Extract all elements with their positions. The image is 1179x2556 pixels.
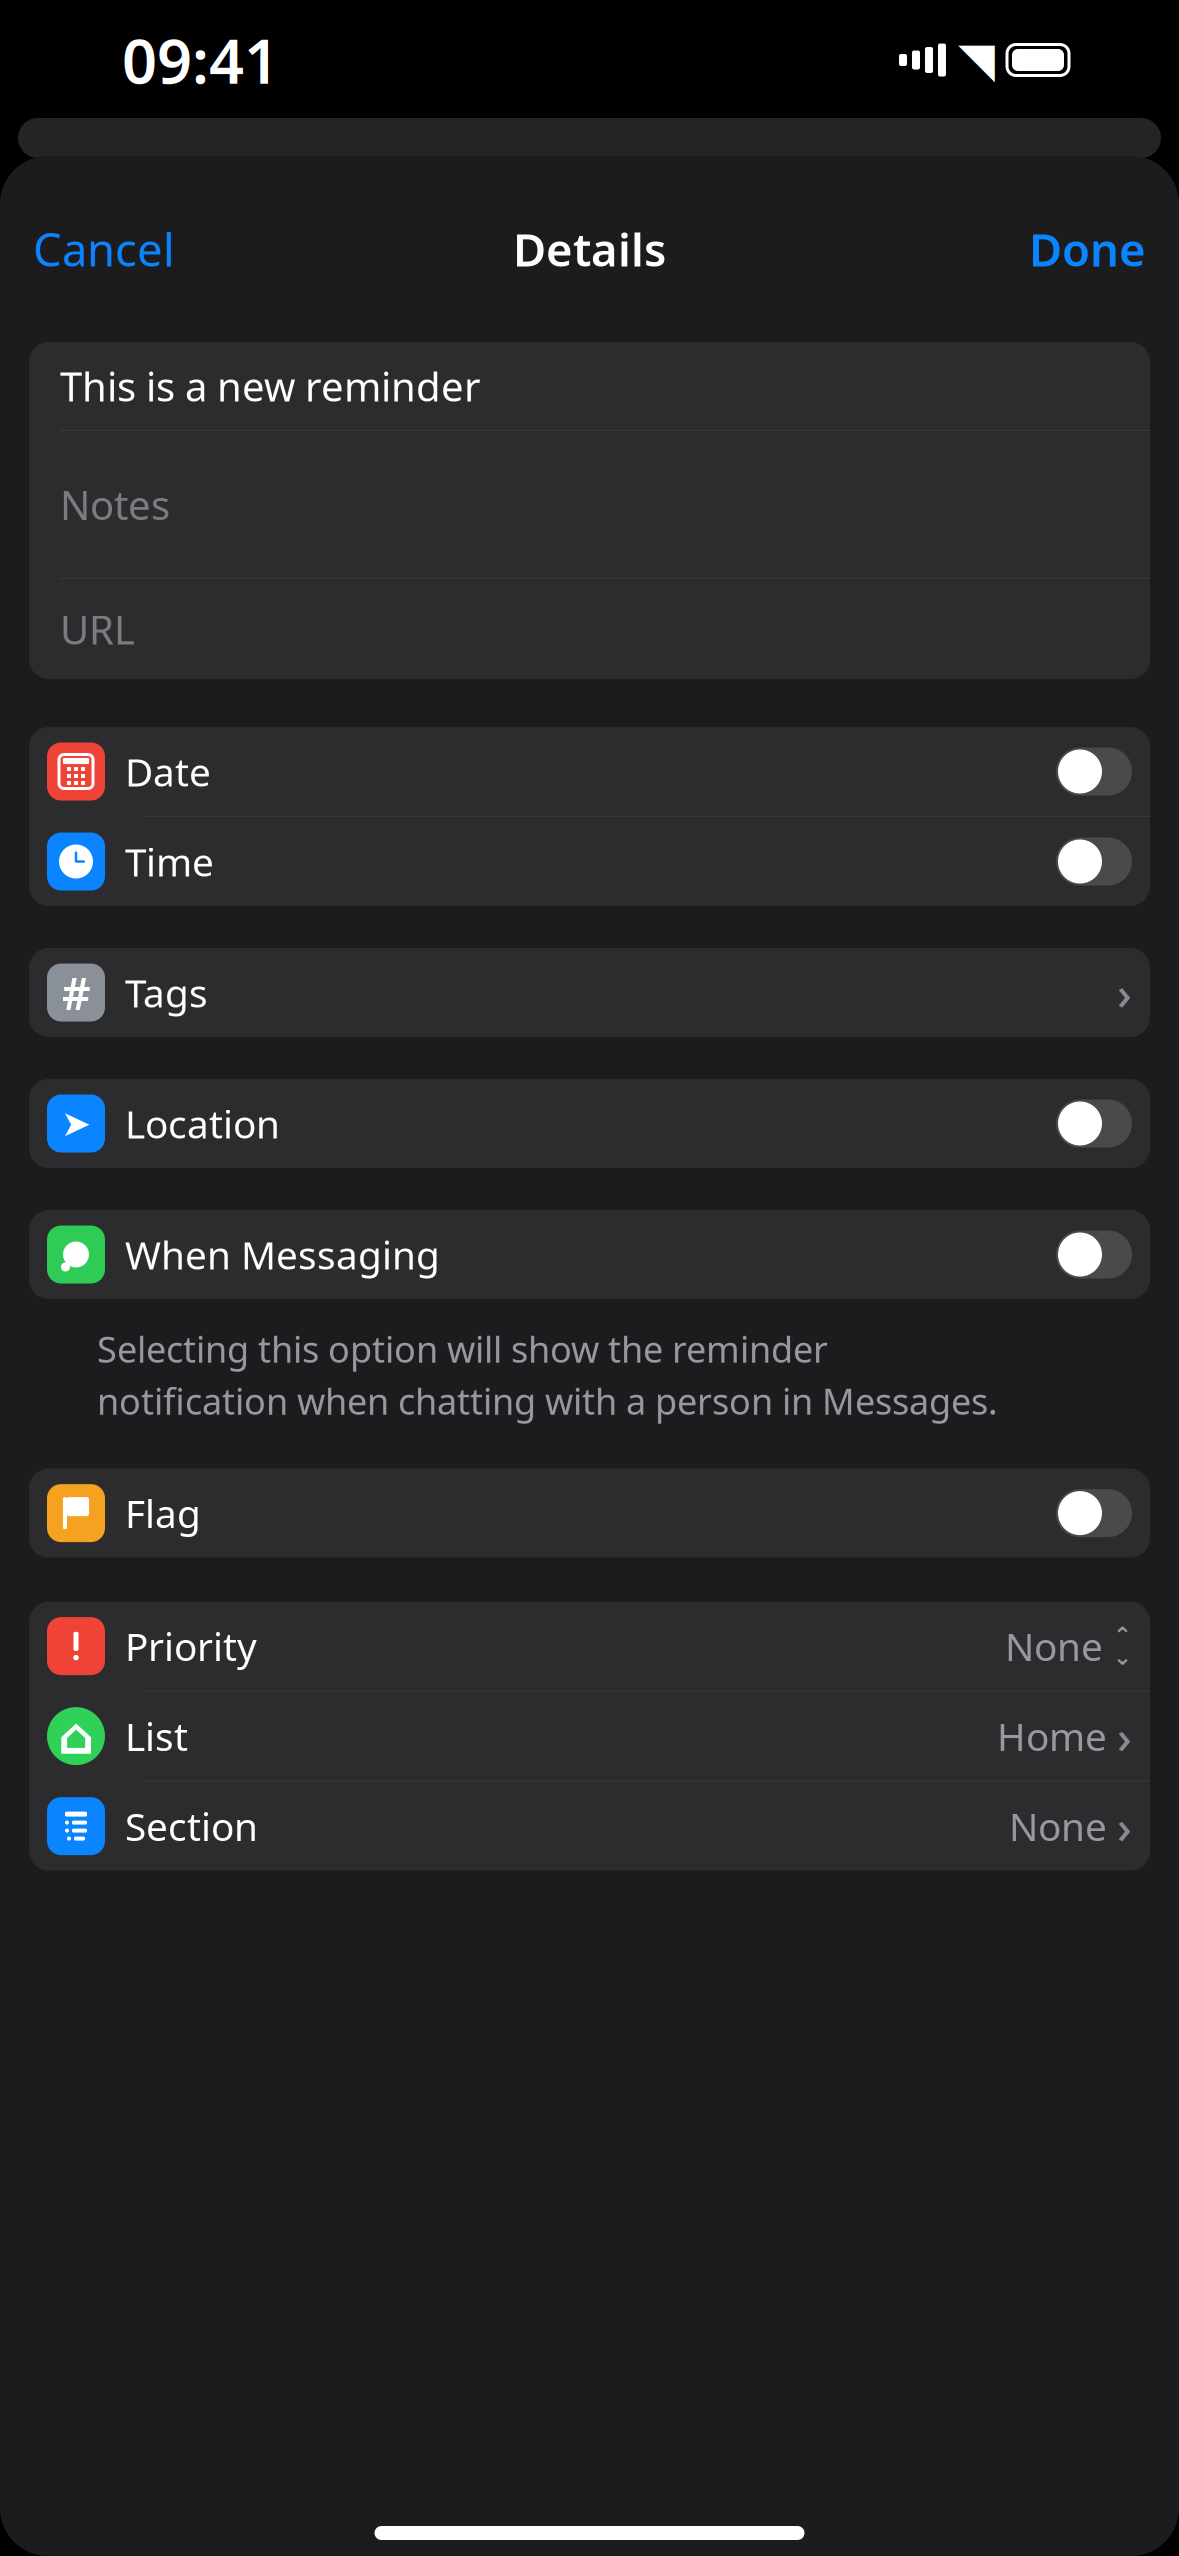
staticText: Location xyxy=(125,1098,280,1149)
button[interactable]: Done xyxy=(1015,209,1160,289)
staticText: ⌃ xyxy=(1113,1622,1132,1648)
staticText: This is a new reminder xyxy=(60,359,481,412)
staticText: notification when chatting with a person… xyxy=(97,1377,998,1425)
button[interactable]: This is a new reminder xyxy=(29,342,1150,430)
staticText: Date xyxy=(125,746,211,797)
staticText: Notes xyxy=(60,478,170,531)
staticText: Flag xyxy=(125,1487,201,1539)
button[interactable]: ➤ xyxy=(29,1079,1150,1168)
button[interactable]: ⌂ xyxy=(29,1692,1150,1781)
button[interactable]: When Messaging xyxy=(29,1210,1150,1299)
staticText: Details xyxy=(513,219,666,279)
staticText: Done xyxy=(1029,219,1146,279)
staticText: Home xyxy=(997,1710,1107,1762)
staticText: ⌄ xyxy=(1113,1644,1132,1670)
staticText: › xyxy=(1117,962,1132,1023)
button[interactable]: Flag xyxy=(29,1469,1150,1558)
button[interactable]: Date xyxy=(29,727,1150,816)
button[interactable]: Time xyxy=(29,817,1150,906)
staticText: Priority xyxy=(125,1620,257,1672)
staticText: › xyxy=(1117,1706,1132,1766)
staticText: None xyxy=(1009,1800,1107,1852)
staticText: Section xyxy=(125,1800,258,1852)
staticText: ➤ xyxy=(61,1103,91,1144)
staticText: Cancel xyxy=(33,219,175,279)
staticText: When Messaging xyxy=(125,1229,440,1280)
staticText: URL xyxy=(60,602,135,655)
staticText: None xyxy=(1005,1620,1103,1672)
button[interactable]: Priority xyxy=(29,1602,1150,1691)
staticText: 09:41 xyxy=(122,19,279,101)
staticText: # xyxy=(61,962,90,1023)
staticText: List xyxy=(125,1710,188,1762)
button[interactable]: Cancel xyxy=(19,209,189,289)
staticText: ◥ xyxy=(958,33,995,87)
button[interactable]: # xyxy=(29,948,1150,1037)
staticText: Selecting this option will show the remi… xyxy=(97,1325,828,1373)
staticText: Time xyxy=(125,836,214,887)
staticText: Tags xyxy=(125,967,208,1018)
staticText: › xyxy=(1117,1796,1132,1856)
button[interactable]: Section xyxy=(29,1782,1150,1871)
button[interactable]: URL xyxy=(29,579,1150,679)
staticText: ⌂ xyxy=(58,1707,94,1765)
button[interactable]: Notes xyxy=(29,431,1150,578)
